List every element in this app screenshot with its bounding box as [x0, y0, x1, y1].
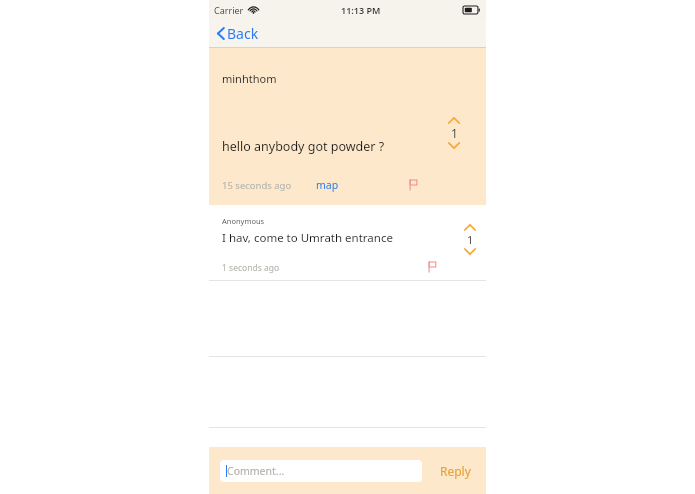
staticText: Anonymous [222, 216, 265, 226]
staticText: 1 [467, 232, 474, 247]
staticText: Reply [440, 463, 471, 479]
staticText: hello anybody got powder ? [222, 138, 385, 155]
staticText: I hav, come to Umrath entrance [222, 230, 393, 246]
button[interactable]: Reply [436, 459, 475, 483]
staticText: 11:13 PM [341, 4, 381, 16]
button[interactable]: map [314, 176, 341, 194]
button[interactable]: Report [425, 259, 440, 275]
button[interactable]: Vote [447, 116, 461, 150]
staticText: minhthom [222, 71, 277, 86]
staticText: 1 [451, 125, 458, 141]
staticText: Back [227, 24, 259, 43]
button[interactable]: Report [406, 177, 421, 193]
staticText: Carrier [214, 4, 244, 16]
staticText: 1 seconds ago [222, 262, 280, 274]
staticText: Comment... [227, 464, 285, 478]
staticText: 15 seconds ago [222, 179, 292, 192]
button[interactable]: Vote [463, 223, 477, 256]
button[interactable]: Comment... [220, 460, 422, 482]
button[interactable]: Back [214, 21, 262, 46]
staticText: map [316, 178, 339, 192]
